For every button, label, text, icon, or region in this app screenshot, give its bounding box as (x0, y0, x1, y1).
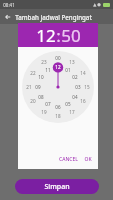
staticText: OK (84, 156, 92, 163)
button[interactable]: Simpan (15, 179, 99, 194)
button[interactable]: OK (81, 154, 95, 165)
staticText: ▲ ● (93, 2, 101, 7)
button[interactable]: Back (0, 9, 15, 24)
staticText: 11 (45, 67, 51, 73)
staticText: 06 (55, 104, 61, 110)
staticText: 17 (69, 109, 75, 115)
staticText: : (56, 24, 61, 47)
staticText: 09 (35, 84, 41, 90)
staticText: 08 (38, 94, 44, 100)
button[interactable]: CANCEL (56, 154, 81, 165)
staticText: 22 (30, 70, 36, 76)
staticText: 50 (61, 24, 81, 47)
staticText: 00 (55, 55, 61, 61)
staticText: 20 (30, 98, 36, 104)
staticText: 23 (41, 59, 47, 65)
staticText: 13 (69, 59, 75, 65)
staticText: 08:41 (3, 2, 15, 8)
button[interactable]: 12 (36, 24, 56, 47)
button[interactable]: 50 (61, 24, 81, 47)
staticText: 07 (45, 101, 51, 107)
staticText: 05 (65, 101, 71, 107)
staticText: CANCEL (59, 156, 78, 163)
staticText: 19 (41, 109, 47, 115)
staticText: 21 (26, 84, 32, 90)
button[interactable]: Clock dial (22, 51, 94, 123)
staticText: 04 (72, 94, 78, 100)
staticText: 12 (36, 24, 56, 47)
staticText: Simpan (44, 182, 70, 192)
staticText: 16 (80, 98, 86, 104)
staticText: 03 (75, 84, 81, 90)
staticText: 01 (65, 67, 71, 73)
staticText: 02 (72, 74, 78, 80)
staticText: Tambah Jadwal Pengingat (15, 13, 92, 21)
staticText: 10 (38, 74, 44, 80)
staticText: 18 (55, 113, 61, 119)
staticText: 15 (84, 84, 90, 90)
staticText: 14 (80, 70, 86, 76)
staticText: 12 (55, 64, 61, 70)
